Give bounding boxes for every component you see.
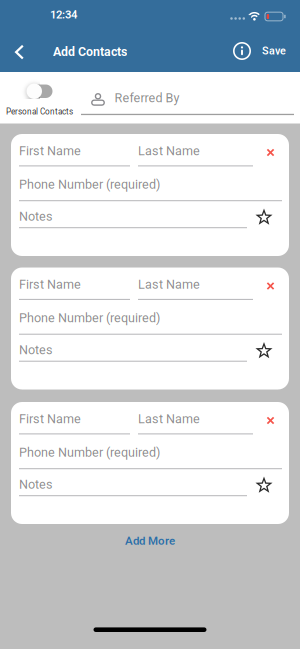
button[interactable] [5, 37, 35, 67]
staticText: Phone Number (required) [19, 177, 160, 192]
staticText: 12:34 [50, 8, 77, 21]
staticText: First Name [19, 411, 81, 426]
button[interactable] [252, 473, 276, 497]
staticText: Last Name [138, 143, 200, 158]
staticText: First Name [19, 143, 81, 158]
staticText: Referred By [114, 90, 179, 105]
button[interactable] [260, 410, 280, 430]
button[interactable] [252, 205, 276, 229]
staticText: Save [262, 44, 286, 57]
staticText: Notes [19, 477, 53, 492]
staticText: Phone Number (required) [19, 310, 160, 325]
button[interactable] [260, 142, 280, 162]
button[interactable]: Save [258, 40, 290, 61]
staticText: Phone Number (required) [19, 445, 160, 460]
staticText: Last Name [138, 277, 200, 292]
button[interactable]: Add More [119, 531, 181, 550]
staticText: Add More [125, 534, 175, 547]
staticText: Last Name [138, 411, 200, 426]
button[interactable] [252, 339, 276, 363]
button[interactable] [229, 38, 255, 64]
staticText: Notes [19, 342, 53, 357]
staticText: Personal Contacts [6, 107, 73, 117]
staticText: Notes [19, 209, 53, 224]
staticText: First Name [19, 277, 81, 292]
button[interactable] [260, 276, 280, 296]
button[interactable] [20, 78, 60, 105]
staticText: Add Contacts [53, 44, 127, 59]
